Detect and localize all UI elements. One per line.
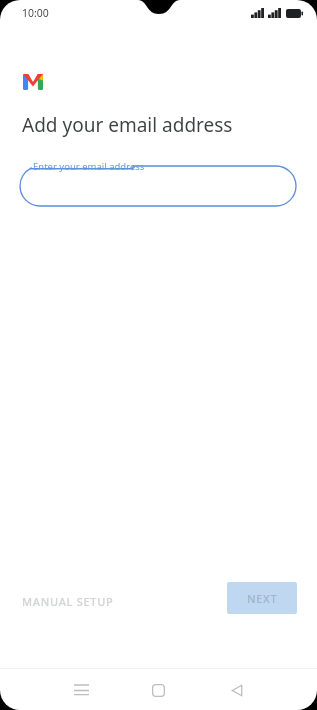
button[interactable]: Home <box>140 672 176 708</box>
button[interactable]: NEXT <box>227 582 297 614</box>
button[interactable]: Enter your email address <box>0 155 317 213</box>
staticText: NEXT <box>247 591 278 606</box>
staticText: MANUAL SETUP <box>22 594 114 609</box>
staticText: Add your email address <box>22 112 233 138</box>
staticText: Enter your email address <box>33 160 145 173</box>
staticText: 10:00 <box>22 6 49 20</box>
button[interactable]: MANUAL SETUP <box>22 594 114 609</box>
button[interactable]: Back <box>219 672 255 708</box>
button[interactable]: Recent apps <box>63 672 99 708</box>
